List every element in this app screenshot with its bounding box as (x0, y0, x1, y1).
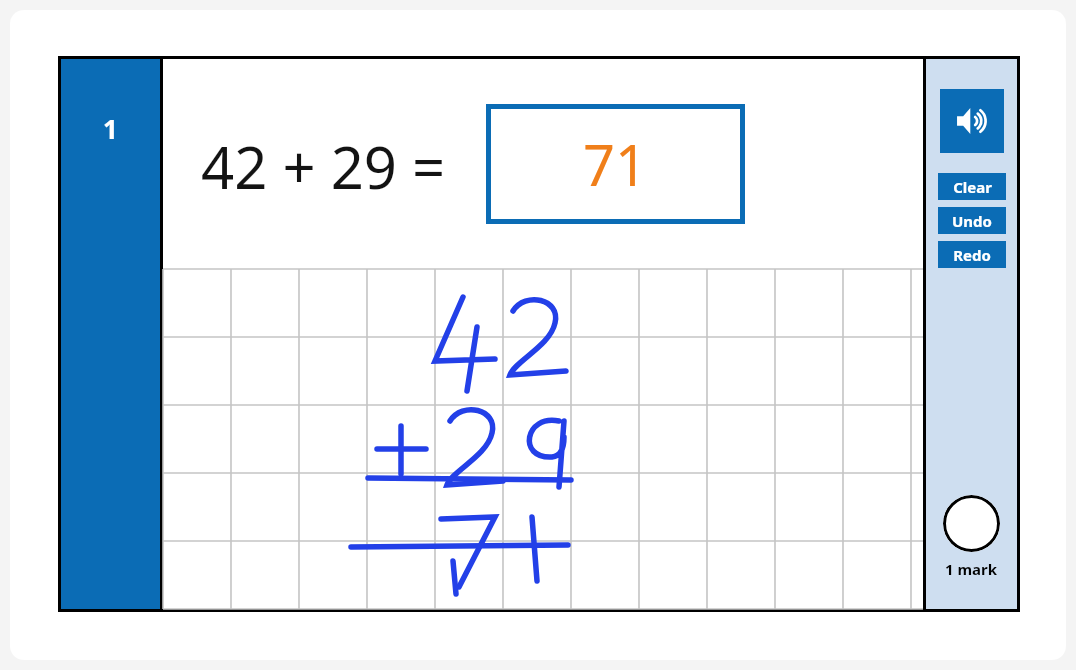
button[interactable]: Redo (938, 241, 1006, 268)
staticText: Undo (952, 211, 992, 231)
button[interactable]: Undo (938, 207, 1006, 234)
staticText: 71 (583, 126, 648, 202)
button[interactable]: Clear (938, 173, 1006, 200)
staticText: Clear (953, 177, 992, 197)
staticText: 1 mark (945, 559, 998, 579)
staticText: 42 + 29 = (201, 127, 446, 206)
button[interactable]: 1 (61, 59, 160, 609)
button[interactable]: Play audio (940, 89, 1004, 153)
staticText: 1 (103, 111, 118, 146)
staticText: Redo (953, 245, 991, 265)
button[interactable]: 71 (491, 109, 740, 219)
